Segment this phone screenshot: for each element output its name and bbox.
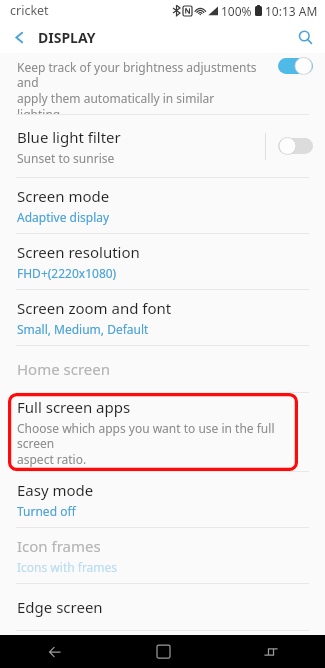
button[interactable]: Screen resolution	[0, 234, 325, 289]
staticText: Home screen	[17, 359, 111, 379]
button[interactable]: Back	[0, 21, 38, 53]
staticText: Keep track of your brightness adjustment…	[17, 59, 259, 114]
staticText: Icons with frames	[17, 559, 118, 575]
staticText: Easy mode	[17, 480, 94, 500]
button[interactable]: Recent apps	[217, 635, 325, 668]
button[interactable]: Toggle auto brightness	[265, 53, 325, 114]
button[interactable]: Home	[109, 635, 217, 668]
button[interactable]: Easy mode	[0, 472, 325, 527]
staticText: Edge screen	[17, 597, 103, 617]
button[interactable]: Toggle blue light filter	[266, 115, 325, 177]
staticText: Icon frames	[17, 536, 101, 556]
button[interactable]: Blue light filter	[0, 115, 325, 177]
staticText: Choose which apps you want to use in the…	[17, 420, 301, 468]
button[interactable]: Home screen	[0, 346, 325, 392]
button[interactable]: Search	[285, 21, 325, 53]
button[interactable]: Back	[0, 635, 109, 668]
staticText: Screen mode	[17, 186, 110, 206]
staticText: Screen zoom and font	[17, 298, 172, 318]
staticText: 100%	[221, 3, 252, 19]
button[interactable]: Screen mode	[0, 178, 325, 233]
staticText: Turned off	[17, 503, 76, 519]
staticText: DISPLAY	[38, 28, 96, 47]
button[interactable]: Full screen apps	[0, 393, 325, 471]
staticText: cricket	[10, 2, 49, 19]
button[interactable]: Keep track of your brightness adjustment…	[0, 53, 325, 114]
staticText: Adaptive display	[17, 209, 110, 225]
staticText: Blue light filter	[17, 127, 121, 147]
staticText: Small, Medium, Default	[17, 321, 149, 337]
button[interactable]: Icon frames	[0, 528, 325, 583]
button[interactable]: Screen zoom and font	[0, 290, 325, 345]
staticText: 10:13 AM	[265, 3, 318, 19]
staticText: Sunset to sunrise	[17, 150, 115, 166]
button[interactable]: Edge screen	[0, 584, 325, 630]
staticText: FHD+(2220x1080)	[17, 265, 117, 281]
staticText: Full screen apps	[17, 397, 131, 417]
staticText: Screen resolution	[17, 242, 140, 262]
